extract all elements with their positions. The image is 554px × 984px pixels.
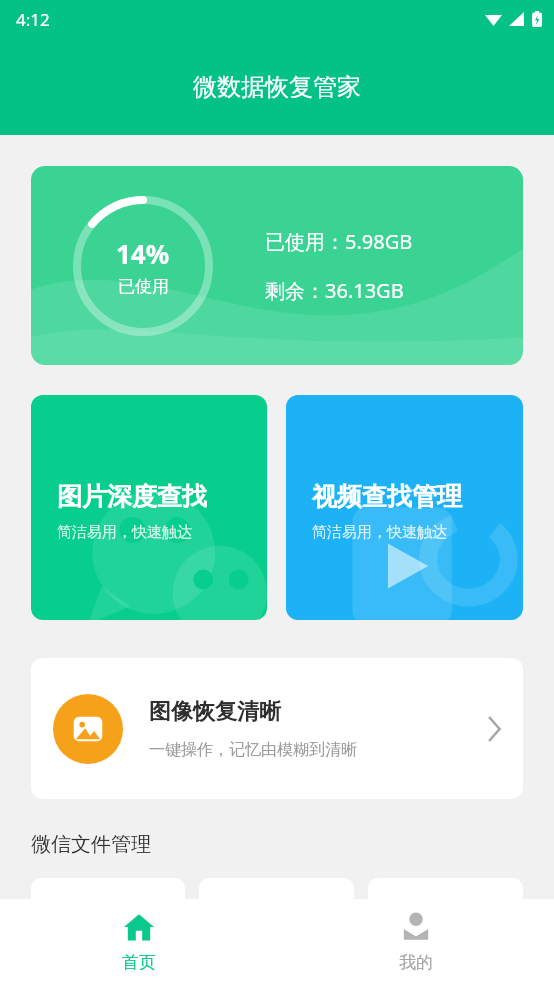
button[interactable]: 图像恢复清晰 [31,658,523,799]
staticText: 已使用：5.98GB [265,228,413,255]
button[interactable] [31,878,185,938]
staticText: 简洁易用，快速触达 [57,523,192,542]
button[interactable]: 首页 [0,899,277,984]
staticText: 14% [116,236,170,271]
staticText: 剩余：36.13GB [265,277,404,304]
staticText: 微数据恢复管家 [193,72,361,102]
staticText: 一键操作，记忆由模糊到清晰 [149,740,357,760]
staticText: 4:12 [16,8,50,31]
button[interactable]: 图片深度查找 [31,395,267,620]
staticText: 图像恢复清晰 [149,698,281,726]
button[interactable]: 14% [31,166,523,365]
staticText: 图片深度查找 [57,481,207,512]
button[interactable]: 我的 [277,899,554,984]
staticText: 微信文件管理 [31,832,151,857]
staticText: 已使用 [118,276,169,297]
staticText: 我的 [399,952,433,973]
button[interactable] [368,878,523,938]
staticText: 首页 [122,952,156,973]
staticText: 视频查找管理 [312,481,462,512]
button[interactable]: 视频查找管理 [286,395,523,620]
staticText: 简洁易用，快速触达 [312,523,447,542]
